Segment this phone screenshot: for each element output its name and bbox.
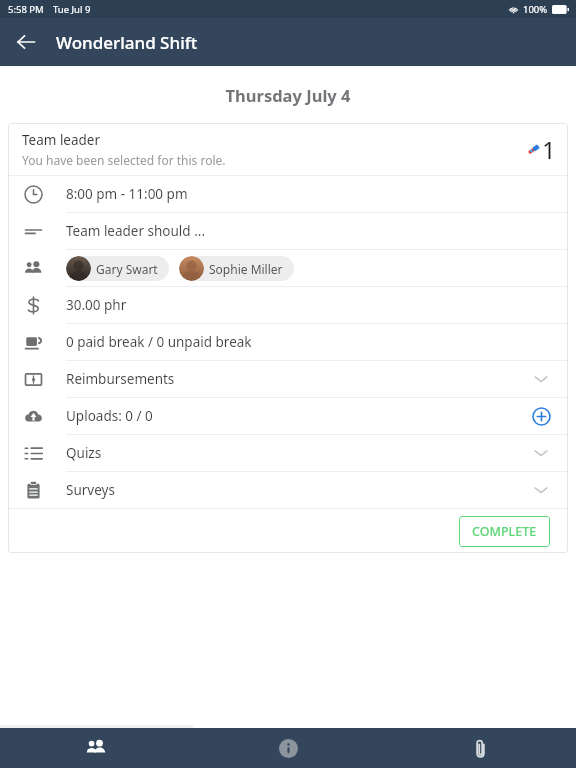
staticText: 30.00 phr bbox=[66, 296, 554, 314]
staticText: Tue Jul 9 bbox=[53, 3, 91, 16]
button[interactable]: Info bbox=[192, 728, 384, 768]
button[interactable]: Attachments bbox=[384, 728, 576, 768]
staticText: Gary Swart bbox=[96, 261, 158, 277]
button[interactable]: 8:00 pm - 11:00 pm bbox=[8, 176, 568, 212]
staticText: Team leader bbox=[22, 131, 101, 149]
staticText: Sophie Miller bbox=[209, 261, 283, 277]
staticText: Reimbursements bbox=[66, 370, 528, 388]
button[interactable]: Reimbursements bbox=[8, 361, 568, 397]
staticText: You have been selected for this role. bbox=[22, 152, 226, 168]
button[interactable]: Team leader bbox=[8, 123, 568, 175]
staticText: Thursday July 4 bbox=[0, 84, 576, 106]
button[interactable]: 0 paid break / 0 unpaid break bbox=[8, 324, 568, 360]
button[interactable]: Uploads: 0 / 0 bbox=[8, 398, 568, 434]
staticText: Uploads: 0 / 0 bbox=[66, 407, 528, 425]
button[interactable]: Gary Swart bbox=[66, 256, 169, 281]
button[interactable]: Gary Swart bbox=[8, 250, 568, 286]
button[interactable]: Expand bbox=[528, 366, 554, 392]
staticText: 0 paid break / 0 unpaid break bbox=[66, 333, 554, 351]
button[interactable]: People bbox=[0, 728, 192, 768]
button[interactable]: Expand bbox=[528, 440, 554, 466]
staticText: Team leader should ... bbox=[66, 222, 554, 240]
button[interactable]: Add upload bbox=[528, 403, 554, 429]
staticText: COMPLETE bbox=[472, 523, 537, 540]
button[interactable]: COMPLETE bbox=[459, 516, 550, 547]
button[interactable]: 30.00 phr bbox=[8, 287, 568, 323]
button[interactable]: Quizs bbox=[8, 435, 568, 471]
button[interactable]: Back bbox=[6, 22, 46, 62]
button[interactable]: Sophie Miller bbox=[179, 256, 294, 281]
staticText: Surveys bbox=[66, 481, 528, 499]
staticText: Wonderland Shift bbox=[56, 31, 198, 54]
button[interactable]: Expand bbox=[528, 477, 554, 503]
staticText: 5:58 PM bbox=[8, 3, 44, 16]
staticText: 100% bbox=[523, 3, 548, 16]
button[interactable]: Surveys bbox=[8, 472, 568, 508]
staticText: Quizs bbox=[66, 444, 528, 462]
button[interactable]: Team leader should ... bbox=[8, 213, 568, 249]
staticText: 1 bbox=[542, 133, 556, 166]
staticText: 8:00 pm - 11:00 pm bbox=[66, 185, 554, 203]
